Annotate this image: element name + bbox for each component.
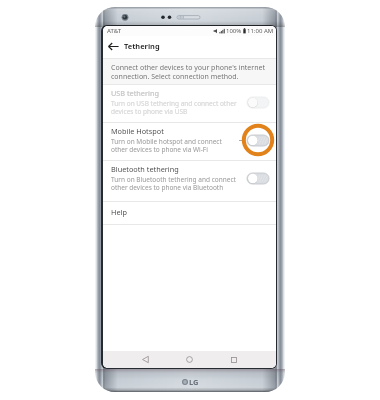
button[interactable]: Toggle	[247, 135, 269, 146]
button[interactable]: Bluetooth tethering	[103, 161, 276, 201]
button[interactable]: Recents	[225, 351, 242, 368]
staticText: AT&T	[107, 27, 122, 35]
button[interactable]: Help	[103, 202, 276, 224]
button[interactable]: Mobile Hotspot	[103, 123, 276, 160]
staticText: Mobile Hotspot	[111, 126, 164, 136]
staticText: 100%	[226, 27, 242, 35]
staticText: Turn on USB tethering and connect other …	[111, 99, 237, 116]
staticText: LG	[189, 377, 199, 387]
button[interactable]: Home	[181, 351, 198, 368]
button[interactable]: Back	[106, 39, 120, 53]
staticText: 11:00 AM	[247, 27, 274, 35]
button[interactable]: Toggle	[247, 173, 269, 184]
staticText: Tethering	[124, 41, 160, 51]
button[interactable]: Toggle	[247, 97, 269, 108]
staticText: Turn on Mobile hotspot and connect other…	[111, 137, 222, 154]
button[interactable]: Back	[137, 351, 154, 368]
staticText: Bluetooth tethering	[111, 164, 179, 174]
staticText: Turn on Bluetooth tethering and connect …	[111, 175, 236, 192]
staticText: Help	[111, 207, 127, 217]
button[interactable]: USB tethering	[103, 85, 276, 122]
staticText: Connect other devices to your phone's in…	[111, 63, 265, 81]
staticText: USB tethering	[111, 88, 159, 98]
